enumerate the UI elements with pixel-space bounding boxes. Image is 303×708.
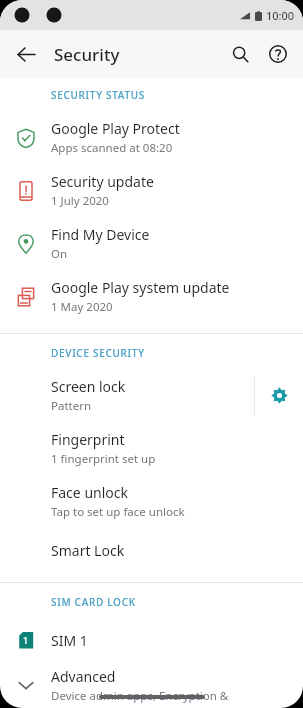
staticText: Smart Lock (51, 541, 125, 560)
staticText: 1 July 2020 (51, 193, 109, 209)
staticText: Security (54, 43, 120, 66)
staticText: 1 May 2020 (51, 299, 113, 315)
staticText: Pattern (51, 398, 92, 414)
staticText: Advanced (51, 667, 116, 686)
button[interactable]: Smart Lock (0, 528, 303, 572)
button[interactable]: Security update (0, 164, 303, 217)
staticText: 1 (23, 634, 29, 646)
button[interactable]: Back (6, 34, 46, 74)
staticText: Screen lock (51, 377, 126, 396)
button[interactable]: 1 (0, 618, 303, 662)
button[interactable]: Screen lock (0, 369, 254, 422)
staticText: Fingerprint (51, 430, 125, 449)
staticText: Google Play system update (51, 278, 230, 297)
staticText: Device admin apps, Encryption & credenti… (51, 688, 291, 704)
staticText: Find My Device (51, 225, 150, 244)
staticText: Apps scanned at 08:20 (51, 140, 173, 156)
button[interactable]: Advanced (0, 662, 303, 708)
staticText: SECURITY STATUS (51, 88, 145, 102)
staticText: SIM CARD LOCK (51, 595, 136, 609)
staticText: On (51, 246, 68, 262)
button[interactable]: Face unlock (0, 475, 303, 528)
button[interactable]: Google Play system update (0, 270, 303, 323)
staticText: Google Play Protect (51, 119, 180, 138)
staticText: DEVICE SECURITY (51, 346, 145, 360)
button[interactable]: Help (259, 35, 297, 73)
button[interactable]: Fingerprint (0, 422, 303, 475)
staticText: Tap to set up face unlock (51, 504, 185, 520)
button[interactable]: Find My Device (0, 217, 303, 270)
staticText: 10:00 (266, 8, 295, 23)
staticText: SIM 1 (51, 631, 88, 650)
staticText: Face unlock (51, 483, 128, 502)
staticText: Security update (51, 172, 154, 191)
button[interactable]: Google Play Protect (0, 111, 303, 164)
button[interactable]: Search (221, 35, 259, 73)
staticText: 1 fingerprint set up (51, 451, 156, 467)
button[interactable]: Screen lock settings (255, 369, 303, 422)
